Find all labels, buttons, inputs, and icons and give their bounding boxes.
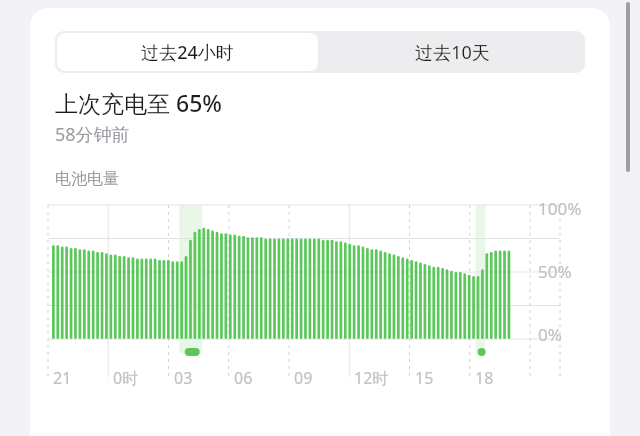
staticText: 03 [174, 367, 193, 389]
staticText: 0% [538, 323, 562, 346]
other: 电池电量图表 [30, 197, 610, 357]
staticText: 0时 [113, 367, 139, 389]
staticText: 21 [53, 367, 72, 389]
staticText: 过去24小时 [141, 40, 234, 65]
button[interactable]: 过去10天 [320, 31, 585, 73]
staticText: 上次充电至 65% [55, 87, 222, 118]
staticText: 12时 [354, 367, 389, 389]
staticText: 06 [234, 367, 253, 389]
staticText: 100% [538, 197, 582, 220]
staticText: 过去10天 [415, 40, 490, 65]
staticText: 09 [294, 367, 313, 389]
staticText: 50% [538, 260, 572, 283]
staticText: 15 [415, 367, 434, 389]
staticText: 58分钟前 [55, 122, 130, 147]
button[interactable]: 过去24小时 [57, 33, 318, 71]
staticText: 电池电量 [55, 169, 119, 189]
staticText: 18 [475, 367, 494, 389]
